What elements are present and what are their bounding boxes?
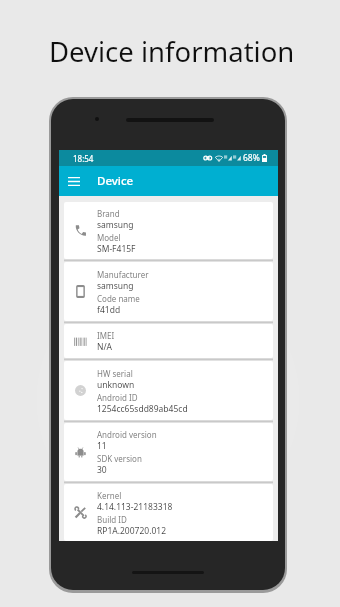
staticText: SM-F415F [97,243,136,255]
staticText: Manufacturer [97,269,149,280]
staticText: 18:54 [73,153,94,164]
staticText: HW serial [97,368,133,379]
staticText: Code name [97,293,140,304]
staticText: SDK version [97,453,142,464]
button[interactable]: Open navigation menu [63,170,85,192]
button[interactable]: Android version [64,423,273,481]
staticText: f41dd [97,304,121,316]
staticText: RP1A.200720.012 [97,525,167,537]
staticText: 30 [97,464,107,476]
staticText: Model [97,232,121,243]
button[interactable]: Kernel [64,484,273,541]
staticText: samsung [97,219,134,231]
staticText: 4.14.113-21183318 [97,501,173,513]
staticText: Android ID [97,392,138,403]
button[interactable]: HW serial [64,361,273,420]
button[interactable]: Brand [64,202,273,259]
staticText: 68% [243,152,260,164]
staticText: Kernel [97,490,122,501]
button[interactable]: Manufacturer [64,262,273,321]
button[interactable]: IMEI [64,324,273,358]
staticText: Device information [49,33,295,70]
staticText: 1254cc65sdd89ab45cd [97,403,188,415]
staticText: unknown [97,379,135,391]
staticText: N/A [97,341,113,353]
staticText: Android version [97,429,157,440]
staticText: Device [97,173,134,189]
staticText: Build ID [97,514,127,525]
staticText: IMEI [97,330,115,341]
staticText: Brand [97,208,120,219]
staticText: 11 [97,440,107,452]
staticText: samsung [97,280,134,292]
